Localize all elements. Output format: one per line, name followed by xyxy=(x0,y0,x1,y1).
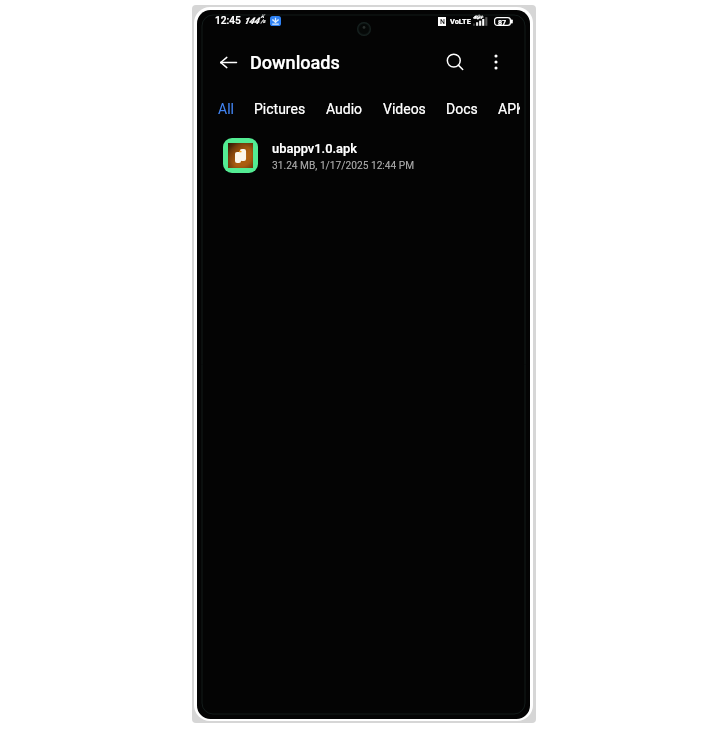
staticText: APK xyxy=(498,101,520,117)
button[interactable]: APK xyxy=(488,93,530,124)
button[interactable]: Pictures xyxy=(244,93,316,124)
button[interactable]: Videos xyxy=(373,93,436,124)
staticText: Downloads xyxy=(250,52,340,73)
button[interactable]: Back xyxy=(210,44,246,80)
staticText: All xyxy=(218,101,234,117)
staticText: Pictures xyxy=(254,101,306,117)
button[interactable]: More options xyxy=(478,44,514,80)
staticText: Videos xyxy=(383,101,426,117)
staticText: Docs xyxy=(446,101,478,117)
button[interactable]: Search xyxy=(437,44,473,80)
staticText: K xyxy=(261,13,265,19)
staticText: 12:45 xyxy=(215,15,241,27)
staticText: N xyxy=(440,18,445,26)
staticText: ubappv1.0.apk xyxy=(272,141,358,156)
staticText: /s xyxy=(261,18,266,24)
staticText: 87 xyxy=(498,18,507,26)
staticText: 4G+ xyxy=(473,14,483,21)
staticText: 144 xyxy=(244,16,260,27)
staticText: Audio xyxy=(326,101,363,117)
button[interactable]: All xyxy=(197,93,244,124)
button[interactable]: Docs xyxy=(436,93,488,124)
button[interactable]: Audio xyxy=(316,93,373,124)
staticText: 31.24 MB, 1/17/2025 12:44 PM xyxy=(272,160,415,172)
staticText: VoLTE xyxy=(450,17,471,26)
button[interactable]: ubappv1.0.apk xyxy=(197,123,530,188)
